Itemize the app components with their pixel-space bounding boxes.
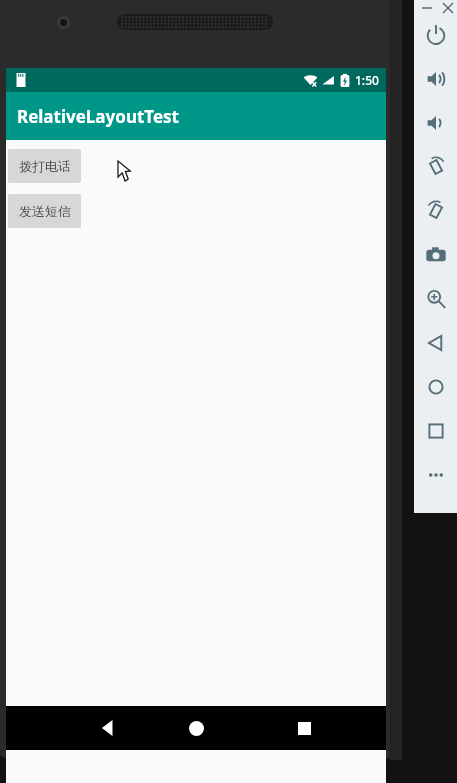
button[interactable]: Home	[166, 706, 226, 750]
button[interactable]: Recent apps	[274, 706, 334, 750]
button[interactable]: Power	[414, 15, 457, 55]
button[interactable]: Back	[414, 323, 457, 363]
button[interactable]: Volume down	[414, 103, 457, 143]
button[interactable]: Zoom	[414, 279, 457, 319]
button[interactable]: 拨打电话	[8, 149, 81, 183]
button[interactable]: Rotate right	[414, 191, 457, 231]
button[interactable]: Rotate left	[414, 147, 457, 187]
staticText: RelativeLayoutTest	[17, 105, 179, 128]
button[interactable]: Home	[414, 367, 457, 407]
button[interactable]: 发送短信	[8, 194, 81, 228]
staticText: 发送短信	[19, 203, 71, 219]
staticText: 1:50	[355, 72, 379, 88]
button[interactable]: Overview	[414, 411, 457, 451]
staticText: 拨打电话	[19, 158, 71, 174]
button[interactable]: Volume up	[414, 59, 457, 99]
button[interactable]: Screenshot	[414, 235, 457, 275]
button[interactable]: Back	[78, 706, 138, 750]
button[interactable]: More	[414, 455, 457, 495]
